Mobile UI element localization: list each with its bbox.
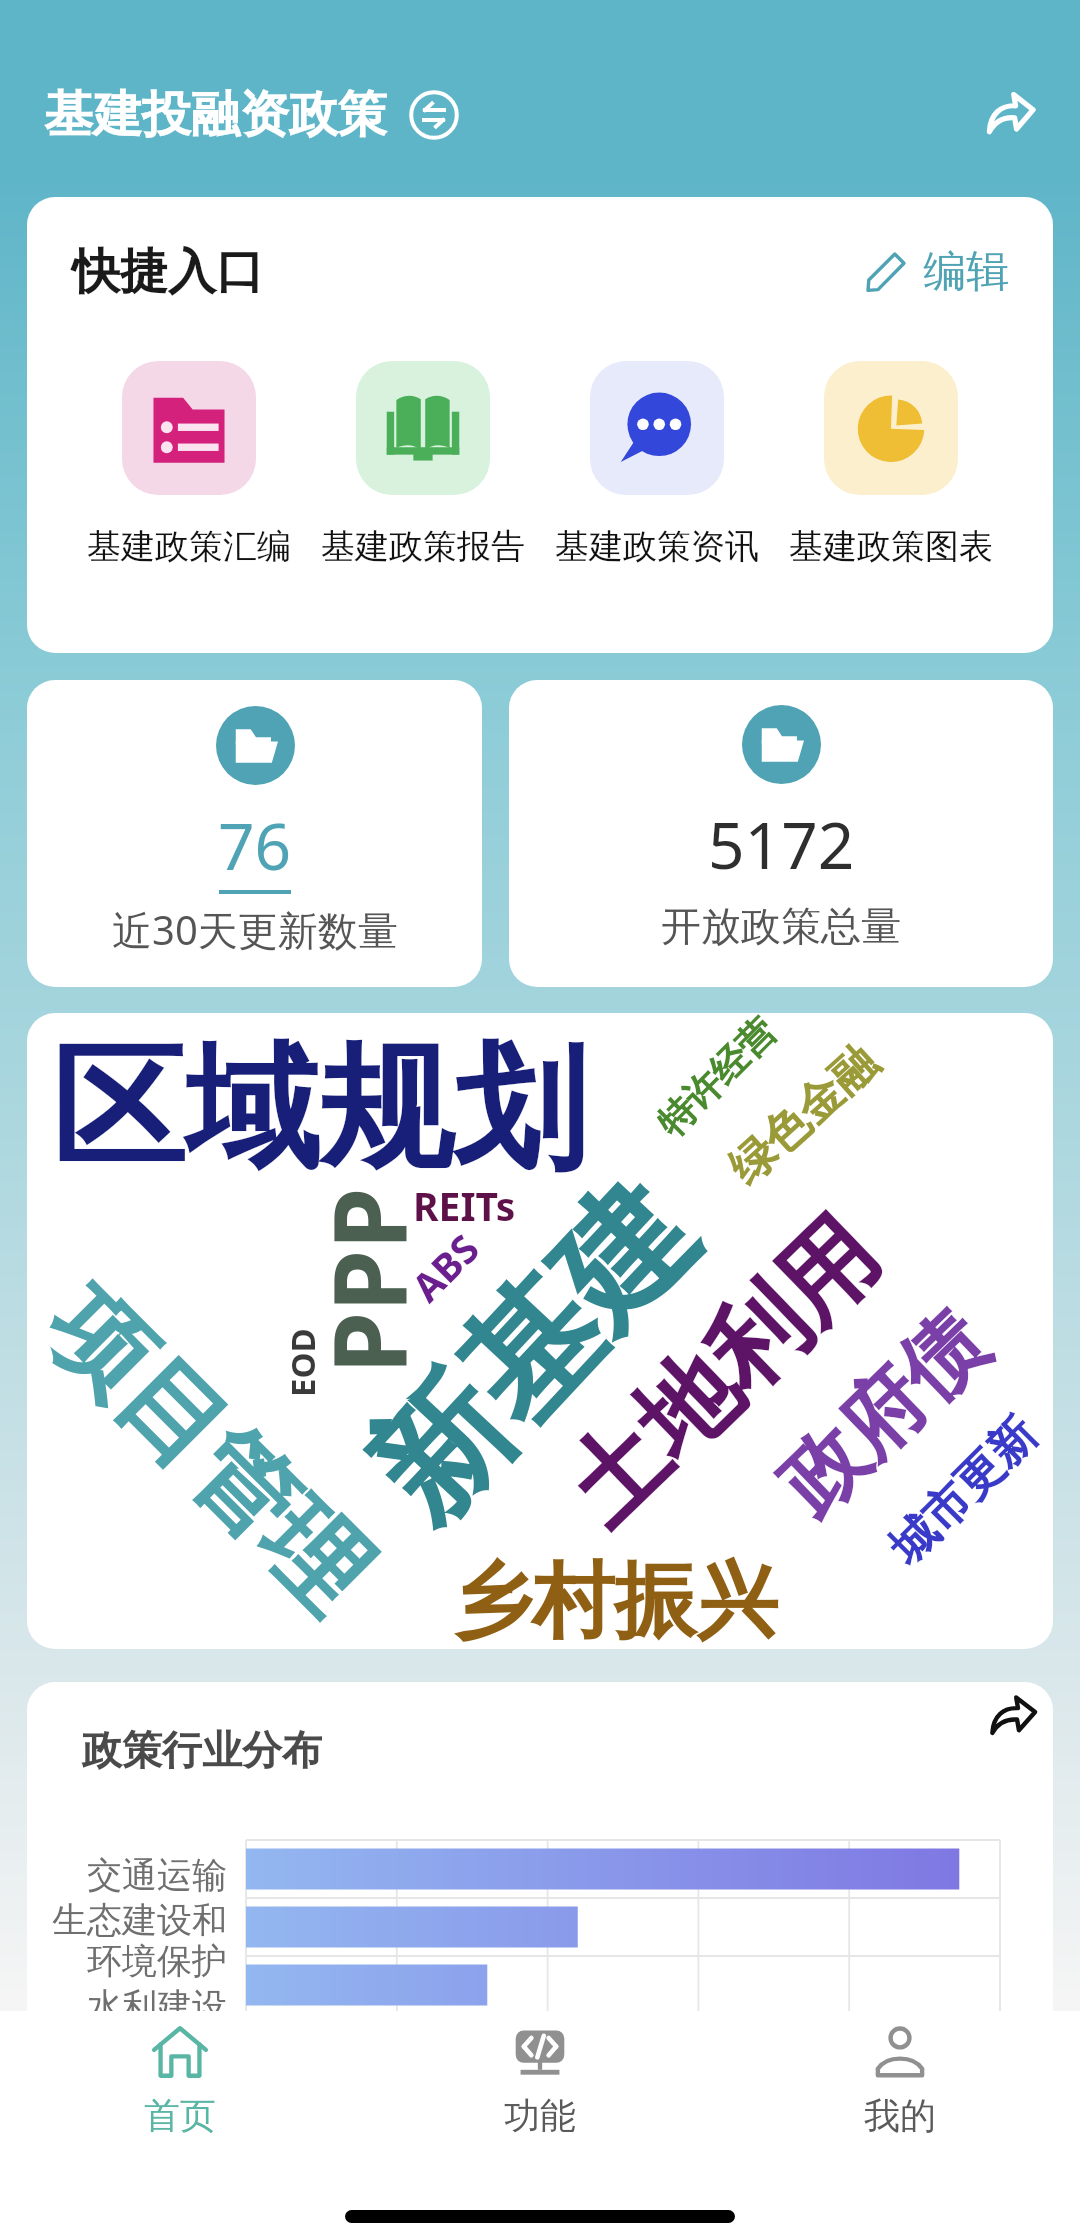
staticText: 编辑 bbox=[923, 245, 1009, 299]
button[interactable]: 首页 bbox=[0, 2011, 360, 2161]
button[interactable]: 基建政策汇编 bbox=[72, 361, 306, 568]
button[interactable]: Switch source bbox=[408, 89, 460, 141]
staticText: 生态建设和 环境保护 bbox=[52, 1898, 227, 1983]
staticText: 特许经营 bbox=[647, 1013, 785, 1146]
staticText: 区域规划 bbox=[51, 1025, 587, 1194]
staticText: 绿色金融 bbox=[717, 1034, 889, 1197]
staticText: 乡村振兴 bbox=[450, 1550, 778, 1649]
button[interactable]: 功能 bbox=[360, 2011, 720, 2161]
button[interactable]: 我的 bbox=[720, 2011, 1080, 2161]
staticText: 交通运输 bbox=[87, 1853, 227, 1897]
staticText: 我的 bbox=[864, 2093, 936, 2138]
staticText: 新基建 bbox=[334, 1148, 729, 1555]
staticText: 基建投融资政策 bbox=[44, 84, 387, 146]
staticText: 快捷入口 bbox=[72, 242, 264, 302]
button[interactable]: Share bbox=[971, 73, 1051, 153]
staticText: 政策行业分布 bbox=[82, 1725, 322, 1775]
staticText: 基建政策报告 bbox=[321, 525, 525, 568]
button[interactable]: 基建政策资讯 bbox=[540, 361, 774, 568]
staticText: 土地利用 bbox=[540, 1193, 904, 1551]
staticText: 76 bbox=[218, 802, 292, 889]
staticText: EOD bbox=[280, 1328, 325, 1397]
staticText: 基建政策资讯 bbox=[555, 525, 759, 568]
staticText: 项目管理 bbox=[27, 1264, 395, 1639]
staticText: 水利建设 bbox=[87, 1984, 227, 2028]
button[interactable]: 76 bbox=[27, 680, 482, 987]
staticText: REITs bbox=[413, 1179, 516, 1232]
staticText: 5172 bbox=[708, 801, 855, 888]
button[interactable]: 区域规划 bbox=[27, 1013, 1053, 1649]
button[interactable]: 编辑 bbox=[862, 241, 1013, 303]
staticText: PPP bbox=[299, 1187, 435, 1374]
staticText: 基建政策汇编 bbox=[87, 525, 291, 568]
button[interactable]: 基建政策图表 bbox=[774, 361, 1008, 568]
staticText: 开放政策总量 bbox=[661, 901, 901, 951]
button[interactable]: 5172 bbox=[509, 680, 1053, 987]
staticText: 近30天更新数量 bbox=[112, 902, 398, 957]
staticText: ABS bbox=[399, 1222, 490, 1312]
button[interactable]: Share chart bbox=[981, 1683, 1045, 1747]
staticText: 基建政策图表 bbox=[789, 525, 993, 568]
staticText: 功能 bbox=[504, 2093, 576, 2138]
staticText: 城市更新 bbox=[877, 1405, 1048, 1576]
staticText: 首页 bbox=[144, 2093, 216, 2138]
staticText: 政府债 bbox=[758, 1291, 1007, 1536]
button[interactable]: 基建政策报告 bbox=[306, 361, 540, 568]
staticText: 城镇综合开发 bbox=[27, 2029, 227, 2121]
